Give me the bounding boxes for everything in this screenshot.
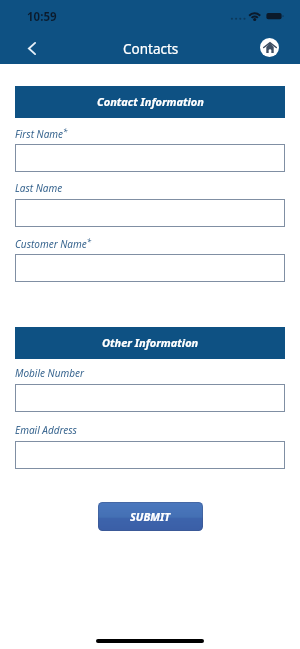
button[interactable]: Customer Name* — [15, 254, 285, 282]
button[interactable]: Email Address — [15, 441, 285, 469]
button[interactable]: Last Name — [15, 199, 285, 227]
button[interactable]: Mobile Number — [15, 384, 285, 412]
staticText: Customer Name* — [15, 236, 92, 251]
staticText: Mobile Number — [15, 366, 84, 380]
staticText: 10:59 — [27, 9, 57, 25]
button[interactable]: First Name* — [15, 144, 285, 172]
staticText: Other Information — [102, 335, 199, 350]
staticText: Contact Information — [97, 94, 204, 109]
button[interactable]: Back — [18, 34, 46, 62]
staticText: Contacts — [123, 40, 179, 58]
button[interactable]: Home — [260, 38, 279, 57]
staticText: Last Name — [15, 181, 63, 195]
button[interactable]: SUBMIT — [98, 502, 203, 531]
staticText: Email Address — [15, 423, 77, 437]
staticText: First Name* — [15, 126, 68, 141]
staticText: SUBMIT — [130, 509, 171, 524]
